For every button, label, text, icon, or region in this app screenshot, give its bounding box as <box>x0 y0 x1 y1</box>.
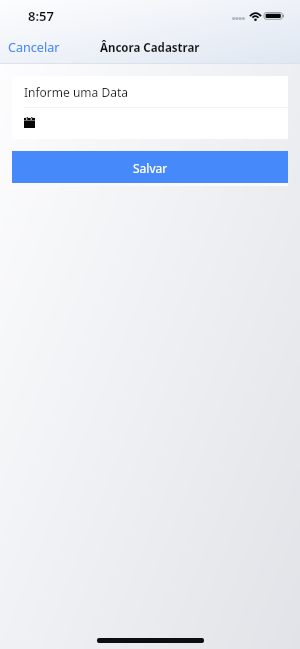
staticText: 8:57 <box>28 7 54 25</box>
button[interactable]: Cancelar <box>0 35 68 60</box>
button[interactable]: Salvar <box>12 151 288 183</box>
staticText: Informe uma Data <box>24 84 128 100</box>
staticText: Âncora Cadastrar <box>100 40 200 56</box>
staticText: Cancelar <box>8 39 60 56</box>
button[interactable]: Select date <box>12 108 288 139</box>
other: Select date <box>24 117 35 128</box>
button[interactable]: Informe uma Data <box>12 76 288 107</box>
staticText: Salvar <box>133 160 168 176</box>
